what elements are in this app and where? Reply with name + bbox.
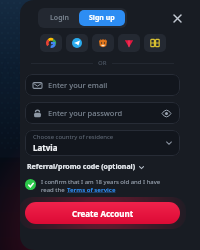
button[interactable]: Choose country of residence xyxy=(25,130,180,156)
staticText: Enter your email xyxy=(48,80,108,90)
staticText: OR xyxy=(98,59,107,67)
button[interactable]: Enter your password xyxy=(25,102,180,124)
button[interactable]: Sign in with TON xyxy=(118,34,140,52)
staticText: Enter your password xyxy=(48,108,160,118)
staticText: I confirm that I am 18 years old and I h… xyxy=(41,178,161,186)
button[interactable]: Enter your email xyxy=(25,74,180,96)
staticText: Create Account xyxy=(72,208,134,219)
button[interactable]: I confirm that I am 18 years old and I h… xyxy=(25,178,180,194)
staticText: Referral/promo code (optional) xyxy=(27,162,136,172)
button[interactable]: Close xyxy=(169,10,185,26)
staticText: read the xyxy=(41,186,67,194)
button[interactable]: Sign in with Web98 xyxy=(144,34,166,52)
button[interactable]: Login xyxy=(40,10,79,26)
staticText: Sign up xyxy=(89,13,115,23)
staticText: Login xyxy=(50,13,69,23)
staticText: Latvia xyxy=(33,142,58,153)
button[interactable]: Sign in with MetaMask xyxy=(92,34,114,52)
button[interactable]: Show password xyxy=(160,107,172,119)
staticText: Choose country of residence xyxy=(33,133,114,141)
button[interactable]: Sign in with Google xyxy=(40,34,62,52)
button[interactable]: Create Account xyxy=(25,202,180,224)
staticText: Terms of service xyxy=(67,186,116,194)
button[interactable]: Sign up xyxy=(79,10,125,26)
button[interactable]: Referral/promo code (optional) xyxy=(27,162,144,172)
button[interactable]: Sign in with Telegram xyxy=(66,34,88,52)
